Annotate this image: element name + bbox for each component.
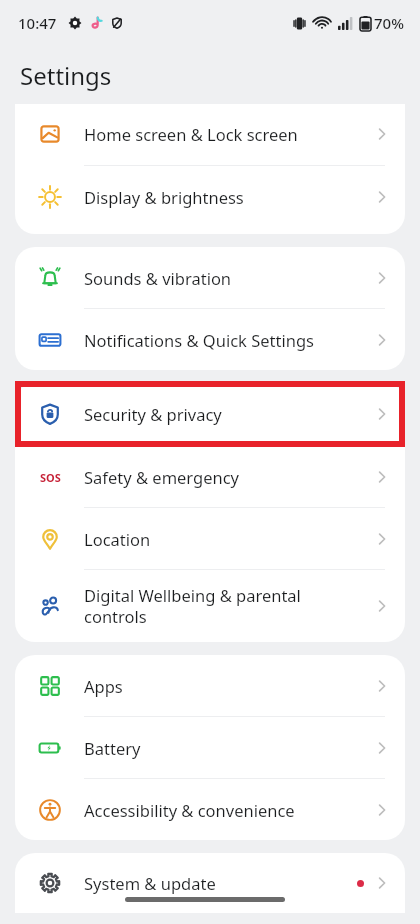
staticText: System & update <box>84 872 345 894</box>
staticText: 10:47 <box>18 13 57 33</box>
staticText: Sounds & vibration <box>84 267 360 289</box>
staticText: Display & brightness <box>84 186 360 208</box>
button[interactable]: Location <box>15 508 405 569</box>
button[interactable]: Sounds & vibration <box>15 247 405 308</box>
staticText: Accessibility & convenience <box>84 799 360 821</box>
staticText: 70% <box>374 13 404 33</box>
staticText: Home screen & Lock screen <box>84 123 360 145</box>
staticText: Notifications & Quick Settings <box>84 329 360 351</box>
button[interactable]: SOS <box>15 446 405 507</box>
staticText: Safety & emergency <box>84 466 360 488</box>
button[interactable]: Notifications & Quick Settings <box>15 309 405 370</box>
button[interactable]: Accessibility & convenience <box>15 779 405 840</box>
button[interactable]: Battery <box>15 717 405 778</box>
button[interactable]: Apps <box>15 655 405 716</box>
button[interactable]: Home screen & Lock screen <box>15 104 405 165</box>
button[interactable]: Display & brightness <box>15 166 405 228</box>
staticText: Digital Wellbeing & parental controls <box>84 584 360 628</box>
staticText: Security & privacy <box>84 403 360 425</box>
staticText: Location <box>84 528 360 550</box>
button[interactable]: System & update <box>15 853 405 913</box>
button[interactable]: Digital Wellbeing & parental controls <box>15 570 405 642</box>
button[interactable]: Security & privacy <box>15 383 405 445</box>
staticText: Settings <box>20 59 112 92</box>
staticText: SOS <box>40 470 61 485</box>
staticText: Battery <box>84 737 360 759</box>
staticText: Apps <box>84 675 360 697</box>
